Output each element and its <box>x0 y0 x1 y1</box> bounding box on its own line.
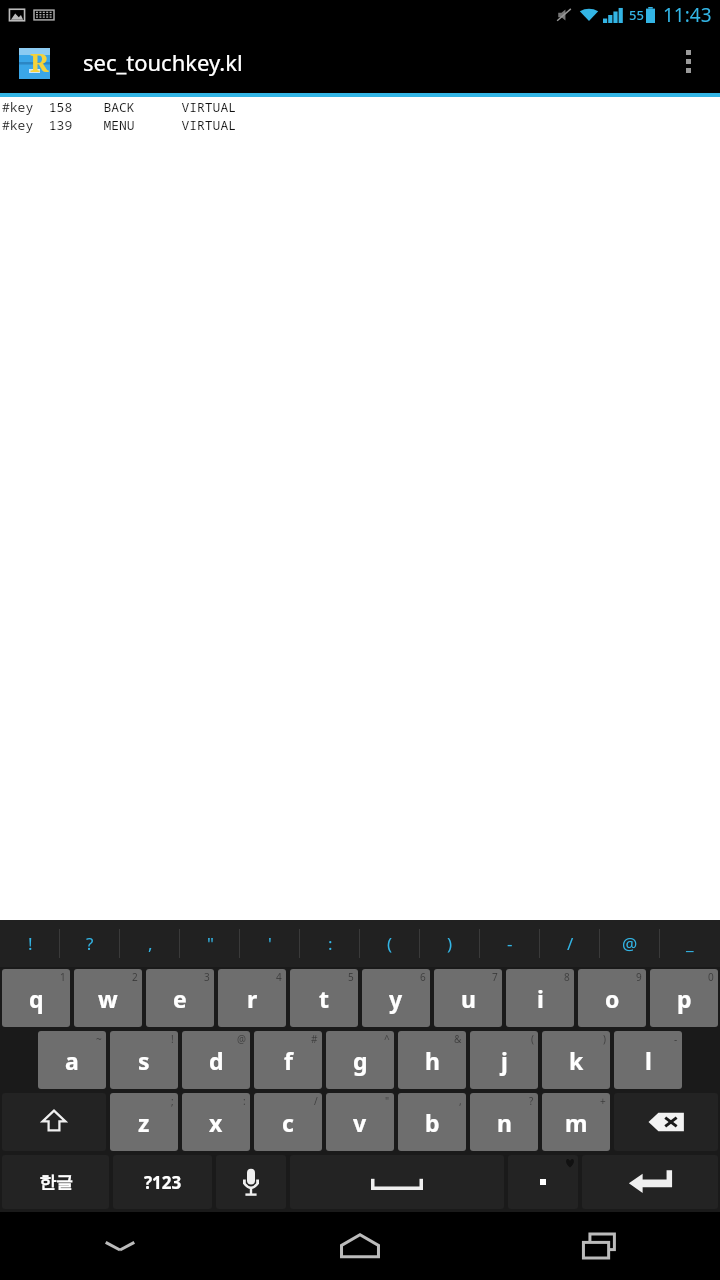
button[interactable]: / <box>540 920 600 967</box>
button[interactable]: v <box>326 1093 394 1151</box>
button[interactable]: c <box>254 1093 322 1151</box>
button[interactable]: j <box>470 1031 538 1089</box>
button[interactable]: Space <box>290 1155 504 1209</box>
staticText: " <box>207 932 214 955</box>
staticText: _ <box>686 932 694 955</box>
staticText: 9 <box>636 970 642 984</box>
button[interactable]: Shift <box>2 1093 106 1151</box>
button[interactable]: r <box>218 969 286 1027</box>
staticText: 2 <box>132 970 138 984</box>
staticText: t <box>319 983 329 1014</box>
staticText: sec_touchkey.kl <box>83 47 243 77</box>
staticText: ?123 <box>144 1171 182 1194</box>
staticText: d <box>209 1045 224 1076</box>
button[interactable]: Recent apps <box>480 1212 720 1280</box>
button[interactable]: _ <box>660 920 720 967</box>
staticText: b <box>425 1107 440 1138</box>
button[interactable]: 한글 <box>2 1155 109 1209</box>
staticText: #key 139 MENU VIRTUAL <box>2 116 237 134</box>
button[interactable]: ?123 <box>113 1155 212 1209</box>
button[interactable]: : <box>300 920 360 967</box>
button[interactable]: p <box>650 969 718 1027</box>
button[interactable]: Backspace <box>614 1093 718 1151</box>
button[interactable]: k <box>542 1031 610 1089</box>
button[interactable]: " <box>180 920 240 967</box>
button[interactable]: ? <box>60 920 120 967</box>
staticText: #key 158 BACK VIRTUAL <box>2 98 237 116</box>
staticText: 4 <box>276 970 282 984</box>
staticText: ) <box>603 1032 606 1046</box>
staticText: ( <box>387 932 393 955</box>
button[interactable] <box>508 1155 578 1209</box>
staticText: 7 <box>492 970 498 984</box>
staticText: g <box>353 1045 368 1076</box>
button[interactable]: , <box>120 920 180 967</box>
staticText: @ <box>622 932 638 955</box>
staticText: / <box>567 932 574 955</box>
button[interactable]: Voice input <box>216 1155 286 1209</box>
button[interactable]: i <box>506 969 574 1027</box>
button[interactable]: g <box>326 1031 394 1089</box>
staticText: # <box>311 1032 318 1046</box>
staticText: ! <box>28 932 33 955</box>
button[interactable]: b <box>398 1093 466 1151</box>
staticText: 11:43 <box>663 2 712 28</box>
staticText: : <box>243 1094 246 1108</box>
staticText: , <box>148 932 153 955</box>
button[interactable]: f <box>254 1031 322 1089</box>
button[interactable]: ' <box>240 920 300 967</box>
staticText: i <box>537 983 544 1014</box>
button[interactable]: - <box>480 920 540 967</box>
button[interactable]: h <box>398 1031 466 1089</box>
staticText: + <box>600 1094 606 1108</box>
staticText: w <box>98 983 118 1014</box>
staticText: : <box>328 932 333 955</box>
staticText: ! <box>171 1032 174 1046</box>
staticText: u <box>461 983 476 1014</box>
button[interactable]: ! <box>0 920 60 967</box>
button[interactable]: e <box>146 969 214 1027</box>
staticText: ^ <box>384 1032 390 1046</box>
staticText: ~ <box>96 1032 102 1046</box>
staticText: s <box>138 1045 150 1076</box>
staticText: z <box>138 1107 150 1138</box>
staticText: o <box>605 983 620 1014</box>
button[interactable]: y <box>362 969 430 1027</box>
staticText: 0 <box>708 970 714 984</box>
button[interactable]: a <box>38 1031 106 1089</box>
staticText: f <box>284 1045 293 1076</box>
button[interactable]: t <box>290 969 358 1027</box>
button[interactable]: w <box>74 969 142 1027</box>
staticText: m <box>565 1107 588 1138</box>
button[interactable]: Hide keyboard <box>0 1212 240 1280</box>
staticText: x <box>209 1107 223 1138</box>
staticText: 8 <box>564 970 570 984</box>
button[interactable]: Home <box>240 1212 480 1280</box>
button[interactable]: More options <box>664 30 712 93</box>
button[interactable]: ) <box>420 920 480 967</box>
button[interactable]: n <box>470 1093 538 1151</box>
button[interactable]: d <box>182 1031 250 1089</box>
button[interactable]: z <box>110 1093 178 1151</box>
staticText: ; <box>171 1094 174 1108</box>
staticText: 55 <box>629 6 644 24</box>
staticText: ( <box>531 1032 534 1046</box>
button[interactable]: o <box>578 969 646 1027</box>
staticText: ? <box>86 932 94 955</box>
button[interactable]: x <box>182 1093 250 1151</box>
staticText: ) <box>447 932 453 955</box>
staticText: 한글 <box>39 1172 73 1193</box>
button[interactable]: u <box>434 969 502 1027</box>
staticText: k <box>569 1045 584 1076</box>
button[interactable]: s <box>110 1031 178 1089</box>
button[interactable]: m <box>542 1093 610 1151</box>
button[interactable]: Enter <box>582 1155 718 1209</box>
staticText: n <box>497 1107 512 1138</box>
button[interactable]: ( <box>360 920 420 967</box>
button[interactable]: @ <box>600 920 660 967</box>
staticText: v <box>353 1107 367 1138</box>
staticText: e <box>173 983 187 1014</box>
button[interactable]: l <box>614 1031 682 1089</box>
staticText: q <box>29 983 44 1014</box>
button[interactable]: q <box>2 969 70 1027</box>
